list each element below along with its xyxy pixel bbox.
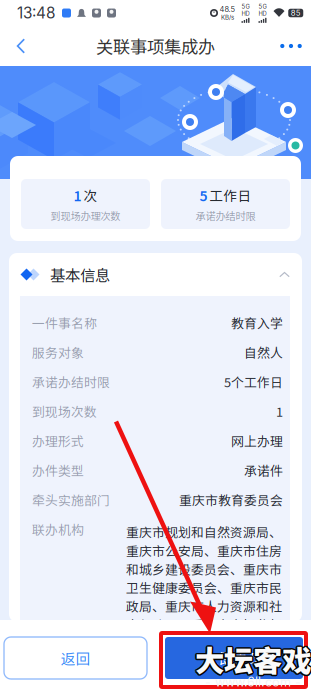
- button[interactable]: 基本信息: [9, 253, 302, 296]
- button[interactable]: 立即办理: [165, 637, 303, 679]
- staticText: - www.6ll.com -: [205, 674, 301, 690]
- button[interactable]: 更多: [271, 26, 311, 66]
- staticText: 返回: [60, 647, 90, 669]
- staticText: 网上办理: [231, 431, 283, 450]
- staticText: 办理形式: [32, 431, 84, 450]
- staticText: 重庆市教育委员会: [179, 490, 283, 509]
- staticText: 工作日: [209, 185, 251, 205]
- staticText: 牵头实施部门: [32, 490, 110, 509]
- staticText: 大坛客戏: [195, 638, 311, 680]
- staticText: 重庆市规划和自然资源局、重庆市公安局、重庆市住房和城乡建设委员会、重庆市卫生健康…: [126, 522, 282, 652]
- staticText: 大坛客戏: [196, 639, 311, 681]
- staticText: 联办机构: [32, 520, 84, 538]
- staticText: 承诺办结时限: [195, 208, 255, 223]
- staticText: 13:48: [17, 4, 55, 22]
- staticText: 一件事名称: [32, 313, 97, 332]
- button[interactable]: 返回: [0, 26, 42, 66]
- staticText: 大坛客戏: [196, 638, 311, 680]
- staticText: 大坛客戏: [194, 638, 310, 680]
- staticText: 承诺办结时限: [32, 372, 110, 391]
- staticText: 85: [291, 8, 301, 18]
- staticText: 次: [83, 185, 97, 205]
- staticText: 1: [276, 402, 283, 420]
- staticText: 基本信息: [50, 263, 110, 286]
- staticText: 大坛客戏: [194, 637, 310, 679]
- staticText: 大坛客戏: [196, 637, 311, 679]
- staticText: 教育入学: [231, 313, 283, 332]
- staticText: 自然人: [244, 343, 283, 361]
- staticText: 大坛客戏: [195, 639, 311, 682]
- staticText: 5: [199, 185, 207, 205]
- staticText: 关联事项集成办: [96, 33, 215, 59]
- staticText: 5G HD: [241, 3, 249, 17]
- staticText: 大坛客戏: [194, 639, 310, 681]
- staticText: 5个工作日: [224, 372, 283, 391]
- staticText: 到现场办理次数: [50, 208, 120, 223]
- staticText: 承诺件: [244, 461, 283, 479]
- staticText: 服务对象: [32, 343, 84, 361]
- button[interactable]: 返回: [4, 637, 147, 679]
- staticText: 48.5: [219, 5, 235, 14]
- staticText: 1: [73, 185, 81, 205]
- staticText: 到现场次数: [32, 402, 97, 420]
- staticText: 办件类型: [32, 461, 84, 479]
- staticText: 5G HD: [258, 3, 266, 17]
- staticText: 立即办理: [204, 647, 264, 669]
- staticText: 大坛客戏: [195, 636, 311, 679]
- staticText: KB/s: [221, 14, 234, 21]
